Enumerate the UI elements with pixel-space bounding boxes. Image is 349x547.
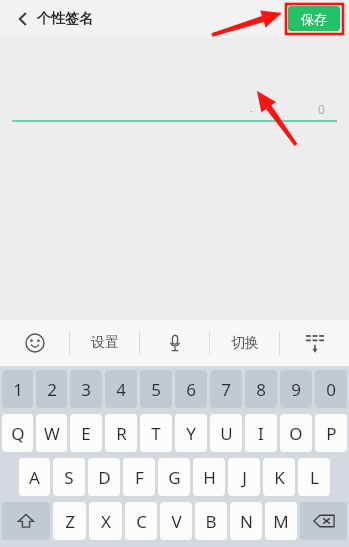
button[interactable]: A	[19, 458, 50, 496]
button[interactable]: 9	[280, 370, 312, 408]
button[interactable]: M	[265, 502, 297, 540]
button[interactable]: 8	[245, 370, 277, 408]
staticText: X	[101, 510, 111, 533]
button[interactable]: F	[123, 458, 155, 496]
staticText: 设置	[91, 334, 119, 352]
staticText: 0	[318, 101, 325, 117]
staticText: 6	[186, 378, 196, 401]
staticText: 7	[221, 378, 231, 401]
staticText: K	[274, 466, 285, 489]
button[interactable]: 设置	[70, 320, 139, 366]
button[interactable]: 7	[210, 370, 242, 408]
button[interactable]: J	[228, 458, 260, 496]
staticText: 个性签名	[37, 10, 93, 28]
button[interactable]: V	[160, 502, 192, 540]
button[interactable]: S	[53, 458, 85, 496]
button[interactable]: 3	[70, 370, 102, 408]
button[interactable]: G	[158, 458, 190, 496]
staticText: E	[81, 422, 91, 445]
button[interactable]: 4	[105, 370, 137, 408]
staticText: P	[326, 422, 337, 445]
staticText: ·	[250, 103, 253, 118]
button[interactable]: 5	[140, 370, 172, 408]
staticText: R	[116, 422, 127, 445]
staticText: 1	[13, 378, 23, 401]
staticText: D	[98, 466, 111, 489]
staticText: O	[289, 422, 303, 445]
button[interactable]: R	[105, 414, 137, 452]
staticText: V	[171, 510, 182, 533]
staticText: M	[273, 510, 289, 533]
button[interactable]: H	[193, 458, 225, 496]
button[interactable]: 保存	[288, 6, 340, 31]
staticText: T	[151, 422, 161, 445]
staticText: 3	[81, 378, 91, 401]
button[interactable]: C	[125, 502, 157, 540]
staticText: Y	[186, 422, 196, 445]
button[interactable]: W	[36, 414, 67, 452]
staticText: 切换	[231, 334, 259, 352]
staticText: B	[205, 510, 217, 533]
staticText: U	[220, 422, 233, 445]
button[interactable]: T	[140, 414, 172, 452]
staticText: 2	[47, 378, 57, 401]
button[interactable]: P	[315, 414, 347, 452]
staticText: 0	[326, 378, 336, 401]
staticText: S	[64, 466, 74, 489]
staticText: Z	[65, 510, 75, 533]
staticText: C	[136, 510, 147, 533]
staticText: 9	[291, 378, 301, 401]
staticText: L	[310, 466, 319, 489]
button[interactable]: Voice input	[140, 320, 209, 366]
button[interactable]: Z	[53, 502, 86, 540]
button[interactable]: N	[230, 502, 262, 540]
staticText: 5	[151, 378, 161, 401]
staticText: 4	[116, 378, 126, 401]
staticText: J	[242, 466, 247, 489]
staticText: 8	[256, 378, 266, 401]
staticText: W	[44, 422, 60, 445]
staticText: I	[258, 422, 264, 445]
button[interactable]: D	[88, 458, 120, 496]
button[interactable]: L	[298, 458, 330, 496]
button[interactable]: 切换	[210, 320, 279, 366]
button[interactable]: 6	[175, 370, 207, 408]
button[interactable]: Shift	[2, 502, 50, 540]
button[interactable]: Hide keyboard	[280, 320, 349, 366]
button[interactable]: U	[210, 414, 242, 452]
button[interactable]: 2	[36, 370, 67, 408]
button[interactable]: K	[263, 458, 295, 496]
button[interactable]: I	[245, 414, 277, 452]
button[interactable]: X	[89, 502, 122, 540]
staticText: G	[168, 466, 181, 489]
staticText: 保存	[301, 11, 327, 27]
button[interactable]: 1	[2, 370, 33, 408]
button[interactable]: Y	[175, 414, 207, 452]
button[interactable]: O	[280, 414, 312, 452]
button[interactable]: 0	[315, 370, 347, 408]
staticText: F	[135, 466, 144, 489]
staticText: A	[29, 466, 40, 489]
staticText: N	[240, 510, 253, 533]
button[interactable]: Backspace	[300, 502, 347, 540]
button[interactable]: Q	[2, 414, 33, 452]
button[interactable]: B	[195, 502, 227, 540]
staticText: Q	[11, 422, 25, 445]
button[interactable]: E	[70, 414, 102, 452]
button[interactable]: Back	[6, 2, 40, 36]
button[interactable]: Emoji	[0, 320, 69, 366]
staticText: H	[203, 466, 216, 489]
